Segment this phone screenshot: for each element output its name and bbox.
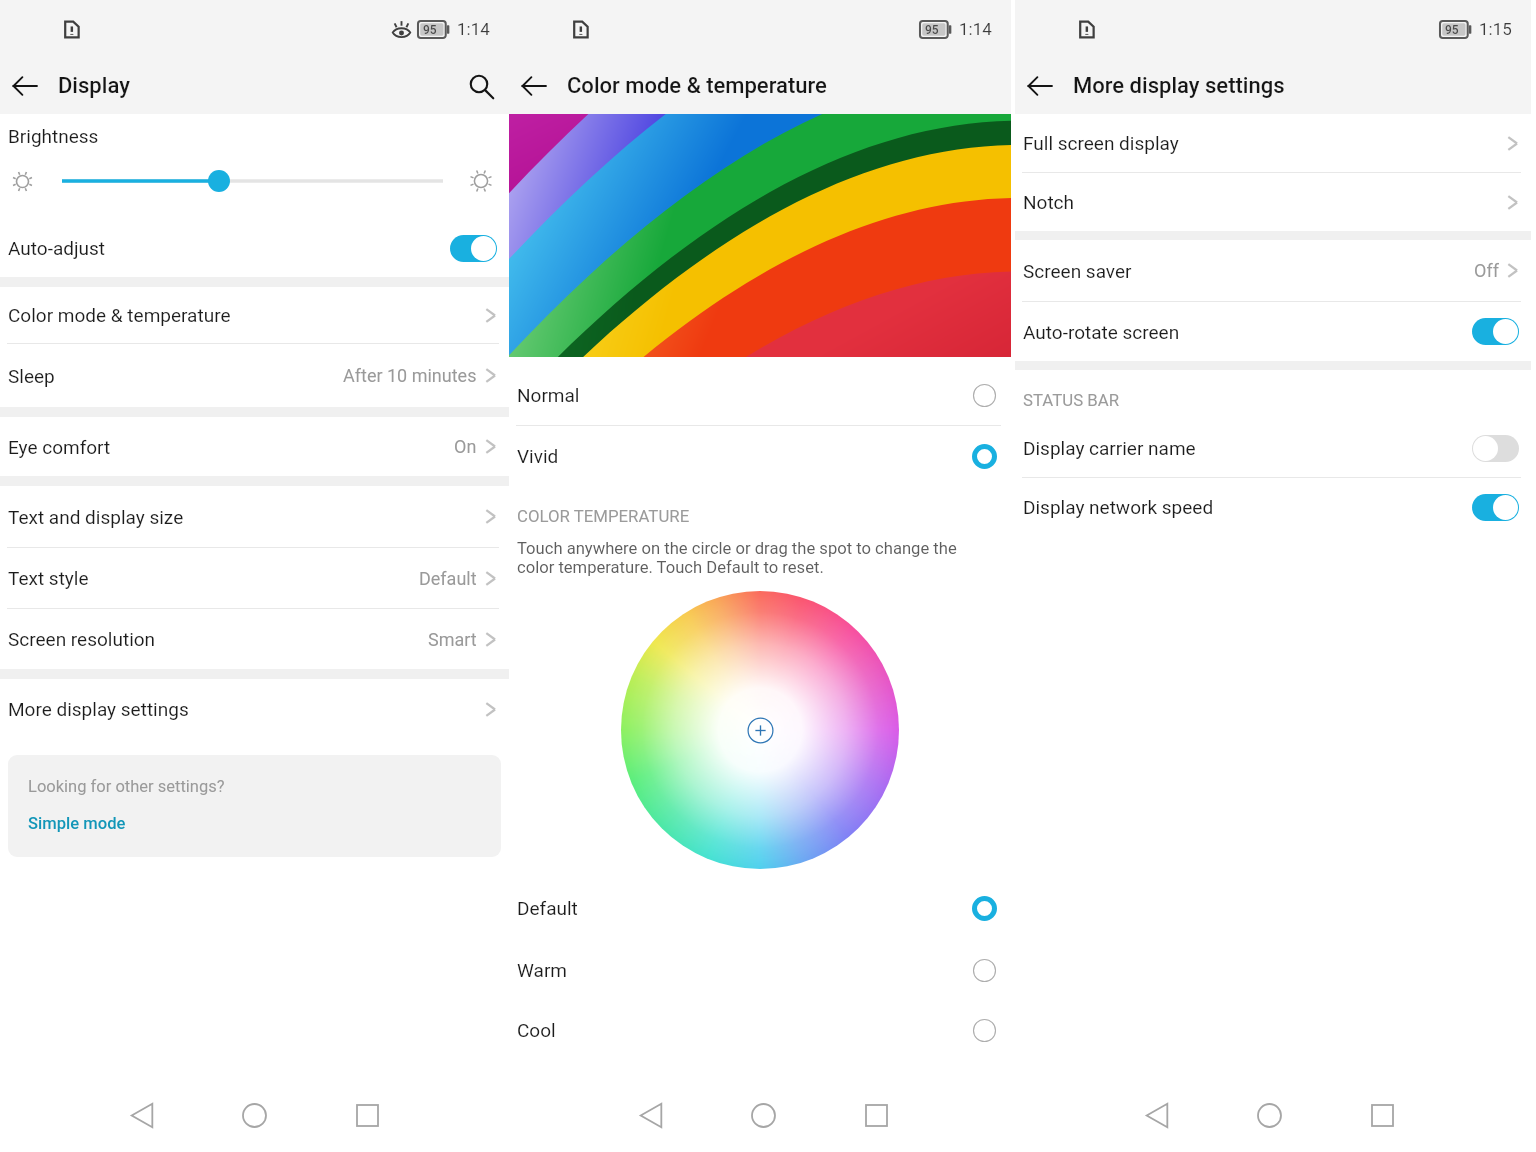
staticText: Display network speed <box>1023 496 1214 518</box>
button[interactable]: Auto-rotate screen <box>1015 302 1531 361</box>
staticText: Simple mode <box>28 814 126 833</box>
button[interactable]: Recents <box>848 1087 905 1144</box>
button[interactable]: More display settings <box>0 679 509 739</box>
button[interactable]: Back <box>113 1087 170 1144</box>
button[interactable]: Normal <box>509 365 1011 425</box>
staticText: Display carrier name <box>1023 437 1196 459</box>
staticText: 95 <box>925 23 939 37</box>
staticText: Eye comfort <box>8 436 111 458</box>
staticText: Full screen display <box>1023 132 1179 154</box>
button[interactable]: Back <box>1128 1087 1185 1144</box>
staticText: Warm <box>517 959 567 981</box>
staticText: Color mode & temperature <box>8 304 231 326</box>
button[interactable]: Color mode & temperature <box>0 287 509 343</box>
staticText: Auto-rotate screen <box>1023 321 1180 343</box>
staticText: Text and display size <box>8 506 184 528</box>
button[interactable]: Notch <box>1015 173 1531 231</box>
staticText: 1:15 <box>1479 19 1512 39</box>
staticText: More display settings <box>8 698 189 720</box>
staticText: 1:14 <box>959 19 992 39</box>
button[interactable]: Auto-adjust <box>0 219 509 277</box>
staticText: 95 <box>423 23 437 37</box>
button[interactable]: Cool <box>509 1001 1011 1059</box>
staticText: Screen saver <box>1023 260 1132 282</box>
staticText: Sleep <box>8 365 55 387</box>
staticText: Default <box>419 568 477 589</box>
staticText: Auto-adjust <box>8 237 105 259</box>
staticText: Vivid <box>517 445 559 467</box>
button[interactable]: Home <box>735 1087 792 1144</box>
staticText: Smart <box>428 629 477 650</box>
staticText: Brightness <box>8 125 99 147</box>
staticText: Touch anywhere on the circle or drag the… <box>517 539 998 577</box>
button[interactable]: Sleep <box>0 344 509 407</box>
staticText: More display settings <box>1073 73 1285 99</box>
button[interactable]: Back <box>1018 64 1062 108</box>
button[interactable]: Search <box>459 64 503 108</box>
staticText: Looking for other settings? <box>28 777 225 796</box>
staticText: COLOR TEMPERATURE <box>517 506 690 526</box>
button[interactable]: Text style <box>0 548 509 608</box>
button[interactable]: Recents <box>339 1087 396 1144</box>
staticText: Display <box>58 73 130 99</box>
button[interactable]: Back <box>622 1087 679 1144</box>
button[interactable]: Recents <box>1354 1087 1411 1144</box>
staticText: Normal <box>517 384 580 406</box>
staticText: After 10 minutes <box>343 365 477 386</box>
button[interactable]: Eye comfort <box>0 417 509 476</box>
staticText: On <box>454 436 477 457</box>
button[interactable]: Back <box>3 64 47 108</box>
staticText: Cool <box>517 1019 556 1041</box>
button[interactable]: Vivid <box>509 426 1011 486</box>
button[interactable]: Screen resolution <box>0 609 509 669</box>
staticText: Notch <box>1023 191 1075 213</box>
button[interactable]: Screen saver <box>1015 240 1531 301</box>
button[interactable]: Warm <box>509 939 1011 1001</box>
button[interactable]: Home <box>226 1087 283 1144</box>
button[interactable]: Default <box>509 877 1011 939</box>
button[interactable]: Home <box>1241 1087 1298 1144</box>
staticText: Default <box>517 897 578 919</box>
staticText: Off <box>1474 260 1499 281</box>
staticText: 95 <box>1445 23 1459 37</box>
staticText: Color mode & temperature <box>567 73 827 99</box>
button[interactable]: Looking for other settings? <box>8 755 501 857</box>
button[interactable]: Back <box>512 64 556 108</box>
staticText: Screen resolution <box>8 628 156 650</box>
staticText: 1:14 <box>457 19 490 39</box>
button[interactable]: Text and display size <box>0 486 509 547</box>
staticText: Text style <box>8 567 89 589</box>
button[interactable]: Full screen display <box>1015 114 1531 172</box>
button[interactable]: Display carrier name <box>1015 419 1531 477</box>
button[interactable]: Display network speed <box>1015 478 1531 536</box>
staticText: STATUS BAR <box>1023 390 1120 410</box>
